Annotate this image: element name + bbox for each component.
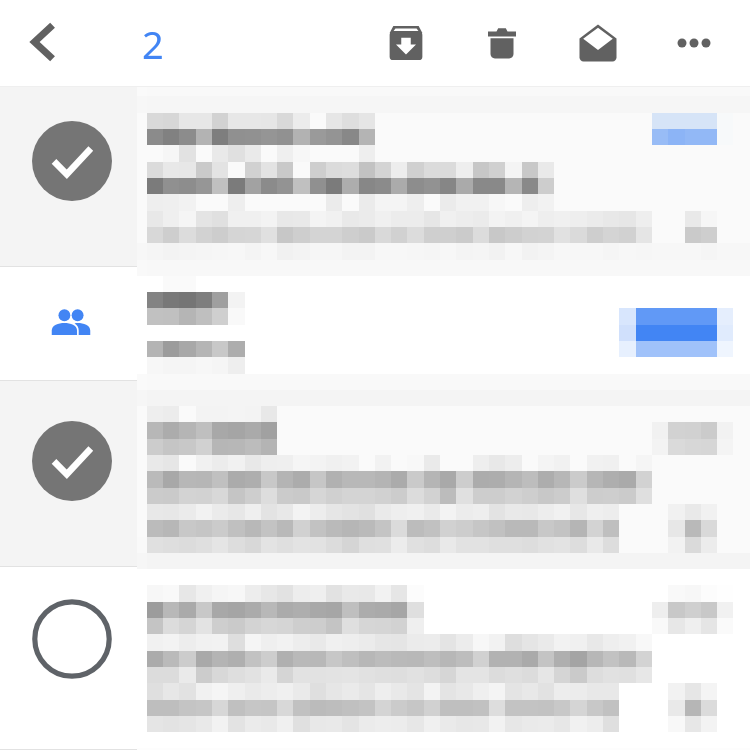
button[interactable]: Mark as unread xyxy=(566,11,630,75)
button[interactable]: Archive xyxy=(374,11,438,75)
staticText: 2 xyxy=(142,18,164,70)
button[interactable]: Delete xyxy=(470,11,534,75)
button[interactable]: Selected xyxy=(0,381,750,567)
button[interactable]: Group conversation xyxy=(49,302,93,346)
button[interactable]: Selected xyxy=(32,121,112,201)
button[interactable]: Selected xyxy=(0,87,750,267)
button[interactable]: Select conversation xyxy=(0,567,750,750)
button[interactable]: Group conversation xyxy=(0,267,750,381)
button[interactable]: More options xyxy=(662,11,726,75)
button[interactable]: Select conversation xyxy=(32,599,112,679)
button[interactable]: Selected xyxy=(32,421,112,501)
button[interactable]: Back xyxy=(12,12,72,72)
